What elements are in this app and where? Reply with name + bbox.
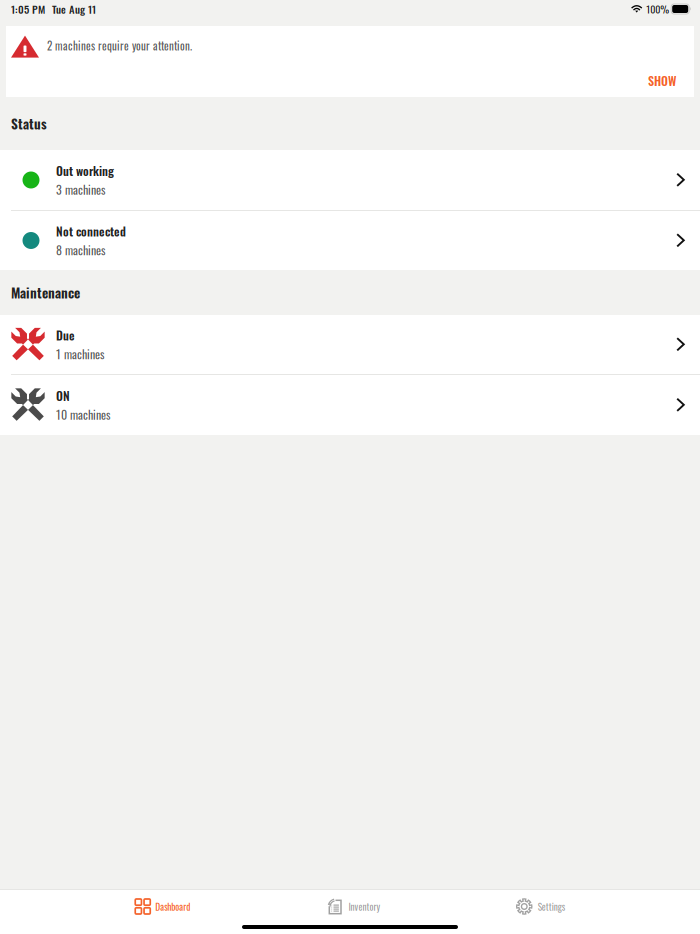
staticText: 3 machines (56, 180, 105, 198)
staticText: SHOW (648, 72, 676, 89)
staticText: 2 machines require your attention. (47, 37, 192, 54)
staticText: Not connected (56, 222, 126, 240)
staticText: Due (56, 326, 75, 344)
button[interactable]: Dashboard (135, 888, 190, 924)
staticText: Settings (538, 900, 565, 913)
button[interactable]: ON (0, 375, 700, 435)
staticText: 1 machines (56, 345, 104, 363)
staticText: 10 machines (56, 405, 110, 423)
button[interactable]: Settings (516, 888, 565, 924)
staticText: Inventory (348, 900, 380, 913)
button[interactable]: Inventory (325, 888, 380, 924)
button[interactable]: SHOW (638, 66, 686, 95)
button[interactable]: Not connected (0, 211, 700, 270)
staticText: 8 machines (56, 241, 105, 259)
staticText: Dashboard (155, 900, 190, 913)
button[interactable]: Out working (0, 150, 700, 210)
staticText: 100% (646, 2, 669, 16)
staticText: Maintenance (11, 283, 80, 302)
staticText: Status (11, 114, 47, 133)
staticText: 1:05 PM (11, 1, 45, 17)
staticText: Tue Aug 11 (52, 1, 96, 17)
button[interactable]: Due (0, 315, 700, 374)
staticText: Out working (56, 162, 114, 179)
staticText: ON (56, 387, 70, 404)
